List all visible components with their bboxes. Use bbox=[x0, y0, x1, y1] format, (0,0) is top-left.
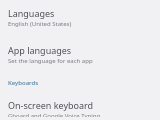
staticText: App languages bbox=[8, 44, 72, 56]
button[interactable]: App languages bbox=[0, 40, 160, 68]
staticText: On-screen keyboard bbox=[8, 99, 94, 111]
staticText: Keyboards bbox=[8, 79, 39, 87]
staticText: Languages bbox=[8, 7, 55, 19]
staticText: Set the language for each app bbox=[8, 57, 93, 65]
button[interactable]: On-screen keyboard bbox=[0, 95, 160, 120]
staticText: Gboard and Google Voice Typing bbox=[8, 112, 101, 117]
button[interactable]: Languages bbox=[0, 3, 160, 31]
staticText: English (United States) bbox=[8, 20, 72, 28]
